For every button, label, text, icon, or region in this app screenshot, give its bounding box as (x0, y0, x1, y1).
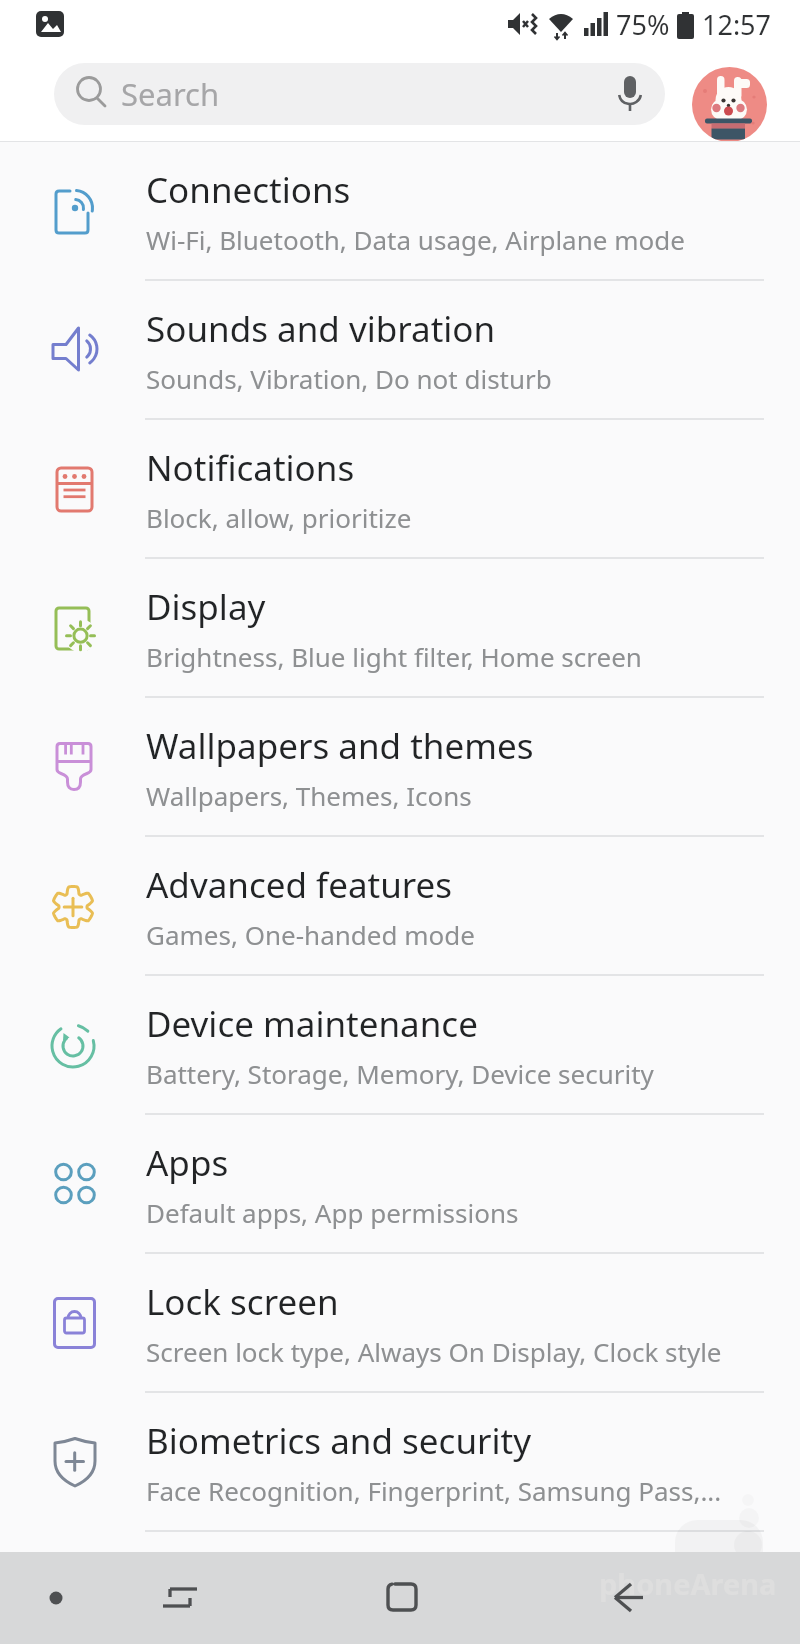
button[interactable]: Search (54, 63, 665, 125)
staticText: Games, One-handed mode (146, 917, 475, 952)
button[interactable]: Biometrics and security (0, 1393, 800, 1532)
staticText: Block, allow, prioritize (146, 500, 412, 535)
button[interactable] (378, 1574, 426, 1622)
staticText: Notifications (146, 444, 355, 492)
staticText: Wi-Fi, Bluetooth, Data usage, Airplane m… (146, 222, 685, 257)
button[interactable] (602, 1574, 650, 1622)
staticText: Face Recognition, Fingerprint, Samsung P… (146, 1473, 722, 1508)
staticText: phoneArena (599, 1564, 777, 1603)
staticText: Screen lock type, Always On Display, Clo… (146, 1334, 722, 1369)
button[interactable]: Sounds and vibration (0, 281, 800, 420)
staticText: Sounds and vibration (146, 305, 496, 353)
staticText: 12:57 (702, 6, 772, 43)
staticText: Biometrics and security (146, 1417, 532, 1465)
button[interactable]: Display (0, 559, 800, 698)
button[interactable]: Notifications (0, 420, 800, 559)
button[interactable]: Apps (0, 1115, 800, 1254)
staticText: Device maintenance (146, 1000, 478, 1048)
button[interactable]: Wallpapers and themes (0, 698, 800, 837)
button[interactable] (156, 1574, 204, 1622)
staticText: Wallpapers and themes (146, 722, 534, 770)
button[interactable] (692, 67, 767, 142)
staticText: Wallpapers, Themes, Icons (146, 778, 472, 813)
staticText: Display (146, 583, 266, 631)
staticText: Sounds, Vibration, Do not disturb (146, 361, 552, 396)
staticText: Battery, Storage, Memory, Device securit… (146, 1056, 654, 1091)
button[interactable] (615, 74, 645, 114)
staticText: 75% (616, 6, 670, 43)
button[interactable]: Advanced features (0, 837, 800, 976)
button[interactable]: Connections (0, 142, 800, 281)
staticText: Advanced features (146, 861, 453, 909)
staticText: Search (121, 73, 220, 115)
staticText: Default apps, App permissions (146, 1195, 519, 1230)
staticText: Lock screen (146, 1278, 339, 1326)
button[interactable]: Lock screen (0, 1254, 800, 1393)
staticText: Apps (146, 1139, 229, 1187)
staticText: Brightness, Blue light filter, Home scre… (146, 639, 642, 674)
button[interactable] (36, 1578, 76, 1618)
staticText: Connections (146, 166, 351, 214)
button[interactable]: Device maintenance (0, 976, 800, 1115)
